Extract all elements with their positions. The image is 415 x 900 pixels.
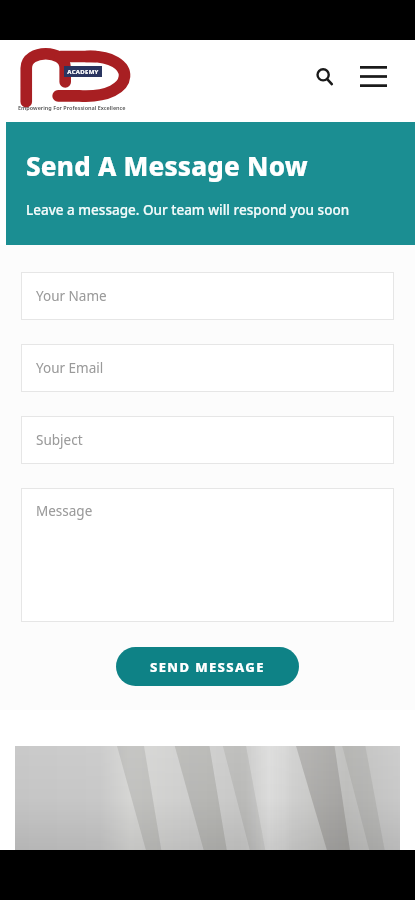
button[interactable]: Your Email [21,344,394,392]
staticText: Empowering For Professional Excellence [18,104,126,111]
button[interactable]: NB Academy home [18,46,136,111]
staticText: ACADEMY [67,68,99,76]
button[interactable]: SEND MESSAGE [116,647,299,686]
staticText: Leave a message. Our team will respond y… [26,201,350,219]
staticText: Send A Message Now [26,148,308,183]
button[interactable]: Subject [21,416,394,464]
staticText: SEND MESSAGE [150,658,265,676]
button[interactable]: Your Name [21,272,394,320]
staticText: Subject [36,431,83,449]
staticText: Message [36,502,93,520]
button[interactable]: Menu [353,56,393,96]
staticText: Your Email [36,359,104,377]
button[interactable]: Message [21,488,394,622]
staticText: Your Name [36,287,107,305]
button[interactable]: Search [307,59,341,93]
